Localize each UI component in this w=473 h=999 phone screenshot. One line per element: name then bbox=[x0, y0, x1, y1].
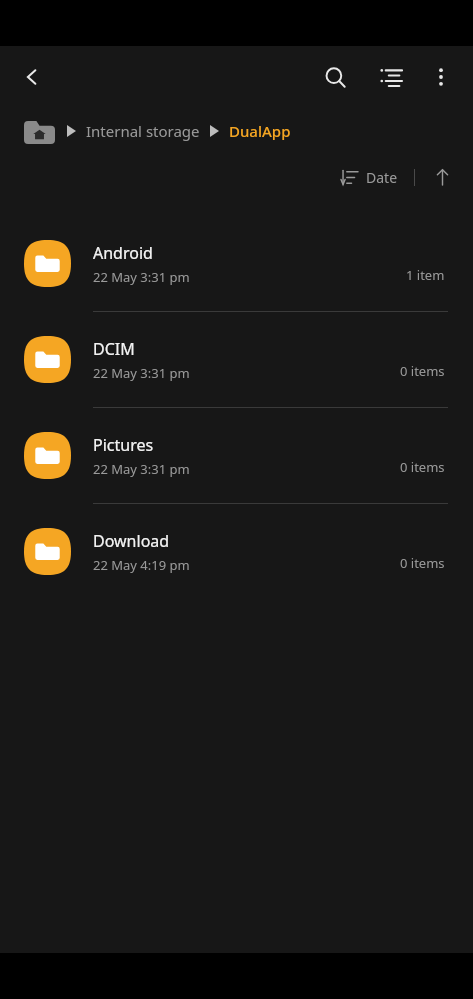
button[interactable]: Download bbox=[0, 504, 473, 599]
staticText: 0 items bbox=[400, 458, 445, 476]
staticText: 22 May 3:31 pm bbox=[93, 460, 190, 478]
button[interactable]: Android bbox=[0, 216, 473, 311]
staticText: 22 May 4:19 pm bbox=[93, 556, 190, 574]
button[interactable]: Pictures bbox=[0, 408, 473, 503]
button[interactable]: DCIM bbox=[0, 312, 473, 407]
button[interactable]: Date bbox=[335, 164, 404, 191]
staticText: 0 items bbox=[400, 362, 445, 380]
button[interactable]: More options bbox=[419, 55, 463, 99]
staticText: DCIM bbox=[93, 338, 135, 360]
button[interactable]: DualApp bbox=[229, 121, 291, 141]
staticText: 1 item bbox=[406, 266, 445, 284]
staticText: Pictures bbox=[93, 434, 154, 456]
button[interactable]: Back bbox=[8, 53, 56, 101]
button[interactable]: Home bbox=[24, 118, 55, 144]
button[interactable]: Internal storage bbox=[86, 121, 200, 141]
staticText: Android bbox=[93, 242, 153, 264]
staticText: 22 May 3:31 pm bbox=[93, 364, 190, 382]
staticText: Date bbox=[366, 168, 398, 187]
staticText: 0 items bbox=[400, 554, 445, 572]
staticText: Download bbox=[93, 530, 170, 552]
staticText: 22 May 3:31 pm bbox=[93, 268, 190, 286]
button[interactable]: Sort ascending bbox=[425, 160, 459, 194]
button[interactable]: View mode bbox=[367, 53, 415, 101]
button[interactable]: Search bbox=[311, 53, 359, 101]
